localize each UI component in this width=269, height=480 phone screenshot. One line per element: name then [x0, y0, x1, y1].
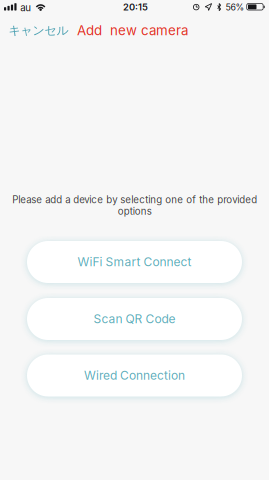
button[interactable]: Wired Connection: [27, 354, 242, 396]
staticText: Wired Connection: [84, 368, 185, 383]
staticText: 20:15: [123, 2, 148, 13]
button[interactable]: キャンセル: [0, 20, 85, 42]
button[interactable]: Add new camera: [77, 19, 197, 41]
staticText: Scan QR Code: [93, 312, 175, 326]
staticText: au: [20, 2, 31, 13]
staticText: キャンセル: [8, 23, 68, 38]
staticText: WiFi Smart Connect: [77, 255, 191, 269]
staticText: 56%: [226, 2, 245, 13]
button[interactable]: WiFi Smart Connect: [27, 241, 242, 283]
button[interactable]: Scan QR Code: [27, 298, 242, 340]
staticText: Please add a device by selecting one of …: [12, 194, 257, 217]
staticText: Add new camera: [77, 22, 188, 38]
